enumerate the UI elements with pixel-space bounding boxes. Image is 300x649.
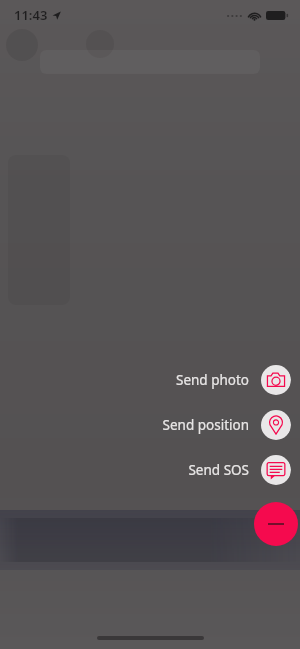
staticText: 11:43	[14, 6, 48, 24]
staticText: Send position	[162, 416, 249, 434]
staticText: Send SOS	[188, 461, 249, 479]
other: Send position	[261, 410, 291, 440]
other: Send photo	[261, 365, 291, 395]
button[interactable]: Send SOS	[180, 453, 291, 487]
staticText: Send photo	[175, 371, 249, 389]
button[interactable]: Send photo	[167, 363, 291, 397]
other: Send SOS	[261, 455, 291, 485]
button[interactable]: Close menu	[254, 502, 298, 546]
button[interactable]: Send position	[154, 408, 291, 442]
